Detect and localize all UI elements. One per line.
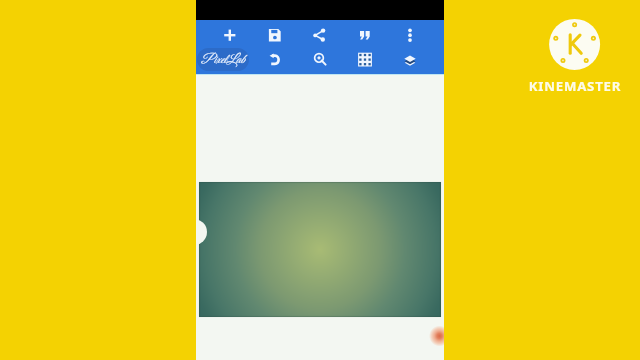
button[interactable]: Save	[253, 21, 297, 46]
button[interactable]: Zoom	[297, 47, 341, 72]
button[interactable]: Crop handle	[196, 219, 207, 245]
staticText: KINEMASTER	[522, 77, 628, 95]
button[interactable]: Quote	[343, 21, 387, 46]
button[interactable]: Layers	[388, 47, 432, 72]
other: KineMaster logo	[0, 0, 640, 360]
staticText: PixelLab	[201, 52, 245, 68]
button[interactable]: Grid	[343, 47, 387, 72]
button[interactable]: More options	[388, 21, 432, 46]
button[interactable]: Undo	[253, 47, 297, 72]
button[interactable]: Add	[208, 21, 252, 46]
button[interactable]: Share	[297, 21, 341, 46]
button[interactable]: PixelLab	[197, 48, 249, 71]
